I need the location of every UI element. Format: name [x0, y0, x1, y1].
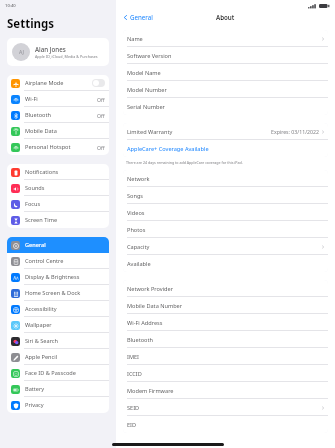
staticText: IMEI: [127, 353, 139, 361]
staticText: Siri & Search: [25, 337, 58, 345]
button[interactable]: Wi-Fi: [7, 91, 109, 107]
button[interactable]: Model Number: [123, 81, 328, 98]
staticText: About: [216, 13, 235, 21]
button[interactable]: Bluetooth: [123, 331, 328, 348]
staticText: AppleCare+ Coverage Available: [127, 145, 209, 153]
staticText: Apple ID, iCloud, Media & Purchases: [35, 54, 98, 59]
button[interactable]: Apple Pencil: [7, 349, 109, 365]
button[interactable]: Airplane Mode: [7, 75, 109, 91]
staticText: Off: [97, 144, 105, 151]
staticText: Photos: [127, 226, 146, 234]
staticText: Network Provider: [127, 285, 174, 293]
staticText: Sounds: [25, 184, 45, 192]
staticText: Songs: [127, 192, 144, 200]
staticText: Accessibility: [25, 305, 57, 313]
button[interactable]: Software Version: [123, 47, 328, 64]
staticText: EID: [127, 421, 137, 429]
staticText: There are 24 days remaining to add Apple…: [126, 160, 243, 165]
button[interactable]: Siri & Search: [7, 333, 109, 349]
staticText: Mobile Data Number: [127, 302, 183, 310]
button[interactable]: Back: [123, 13, 153, 21]
staticText: Bluetooth: [127, 336, 153, 344]
button[interactable]: Mobile Data: [7, 123, 109, 139]
staticText: Modem Firmware: [127, 387, 174, 395]
staticText: Face ID & Passcode: [25, 369, 76, 377]
button[interactable]: Network: [123, 170, 328, 187]
staticText: Network: [127, 175, 150, 183]
button[interactable]: Display & Brightness: [7, 269, 109, 285]
button[interactable]: Photos: [123, 221, 328, 238]
staticText: Focus: [25, 200, 41, 208]
button[interactable]: Battery: [7, 381, 109, 397]
staticText: Control Centre: [25, 257, 64, 265]
staticText: Notifications: [25, 168, 59, 176]
staticText: SEID: [127, 404, 140, 412]
button[interactable]: AJ: [7, 38, 109, 66]
button[interactable]: Mobile Data Number: [123, 297, 328, 314]
staticText: Wallpaper: [25, 321, 52, 329]
staticText: Bluetooth: [25, 111, 51, 119]
button[interactable]: Privacy: [7, 397, 109, 413]
button[interactable]: Limited Warranty: [123, 123, 328, 140]
button[interactable]: Modem Firmware: [123, 382, 328, 399]
button[interactable]: Wi-Fi Address: [123, 314, 328, 331]
staticText: Apple Pencil: [25, 353, 58, 361]
button[interactable]: Accessibility: [7, 301, 109, 317]
button[interactable]: Network Provider: [123, 280, 328, 297]
staticText: Privacy: [25, 401, 44, 409]
staticText: Available: [127, 260, 151, 268]
staticText: Wi-Fi: [25, 95, 38, 103]
staticText: Mobile Data: [25, 127, 57, 135]
button[interactable]: SEID: [123, 399, 328, 416]
staticText: ICCID: [127, 370, 142, 378]
button[interactable]: Model Name: [123, 64, 328, 81]
button[interactable]: Focus: [7, 196, 109, 212]
staticText: Wi-Fi Address: [127, 319, 163, 327]
staticText: Alan Jones: [35, 45, 66, 53]
button[interactable]: Sounds: [7, 180, 109, 196]
staticText: Airplane Mode: [25, 79, 64, 87]
staticText: Model Number: [127, 86, 167, 94]
staticText: 10:40: [5, 3, 16, 9]
staticText: Model Name: [127, 69, 161, 77]
button[interactable]: Wallpaper: [7, 317, 109, 333]
staticText: Name: [127, 35, 143, 43]
staticText: Battery: [25, 385, 45, 393]
button[interactable]: Face ID & Passcode: [7, 365, 109, 381]
staticText: Display & Brightness: [25, 273, 80, 281]
staticText: Capacity: [127, 243, 150, 251]
button[interactable]: IMEI: [123, 348, 328, 365]
staticText: Screen Time: [25, 216, 58, 224]
button[interactable]: Control Centre: [7, 253, 109, 269]
button[interactable]: Videos: [123, 204, 328, 221]
button[interactable]: Name: [123, 30, 328, 47]
staticText: Personal Hotspot: [25, 143, 71, 151]
button[interactable]: EID: [123, 416, 328, 433]
other: Back: [123, 15, 128, 20]
button[interactable]: Notifications: [7, 164, 109, 180]
staticText: Expires: 03/11/2022: [271, 128, 319, 135]
staticText: Serial Number: [127, 103, 165, 111]
button[interactable]: Bluetooth: [7, 107, 109, 123]
button[interactable]: Home Screen & Dock: [7, 285, 109, 301]
staticText: Software Version: [127, 52, 172, 60]
staticText: General: [25, 241, 46, 249]
staticText: Settings: [7, 16, 55, 32]
staticText: Off: [97, 112, 105, 119]
staticText: AJ: [19, 49, 24, 56]
button[interactable]: Capacity: [123, 238, 328, 255]
staticText: Off: [97, 96, 105, 103]
button[interactable]: General: [7, 237, 109, 253]
button[interactable]: Serial Number: [123, 98, 328, 115]
staticText: Home Screen & Dock: [25, 289, 81, 297]
button[interactable]: Songs: [123, 187, 328, 204]
staticText: Videos: [127, 209, 145, 217]
button[interactable]: Available: [123, 255, 328, 272]
button[interactable]: Screen Time: [7, 212, 109, 228]
button[interactable]: AppleCare+ Coverage Available: [123, 140, 328, 157]
staticText: General: [130, 13, 153, 21]
button[interactable]: Personal Hotspot: [7, 139, 109, 155]
staticText: Limited Warranty: [127, 128, 173, 136]
button[interactable]: ICCID: [123, 365, 328, 382]
